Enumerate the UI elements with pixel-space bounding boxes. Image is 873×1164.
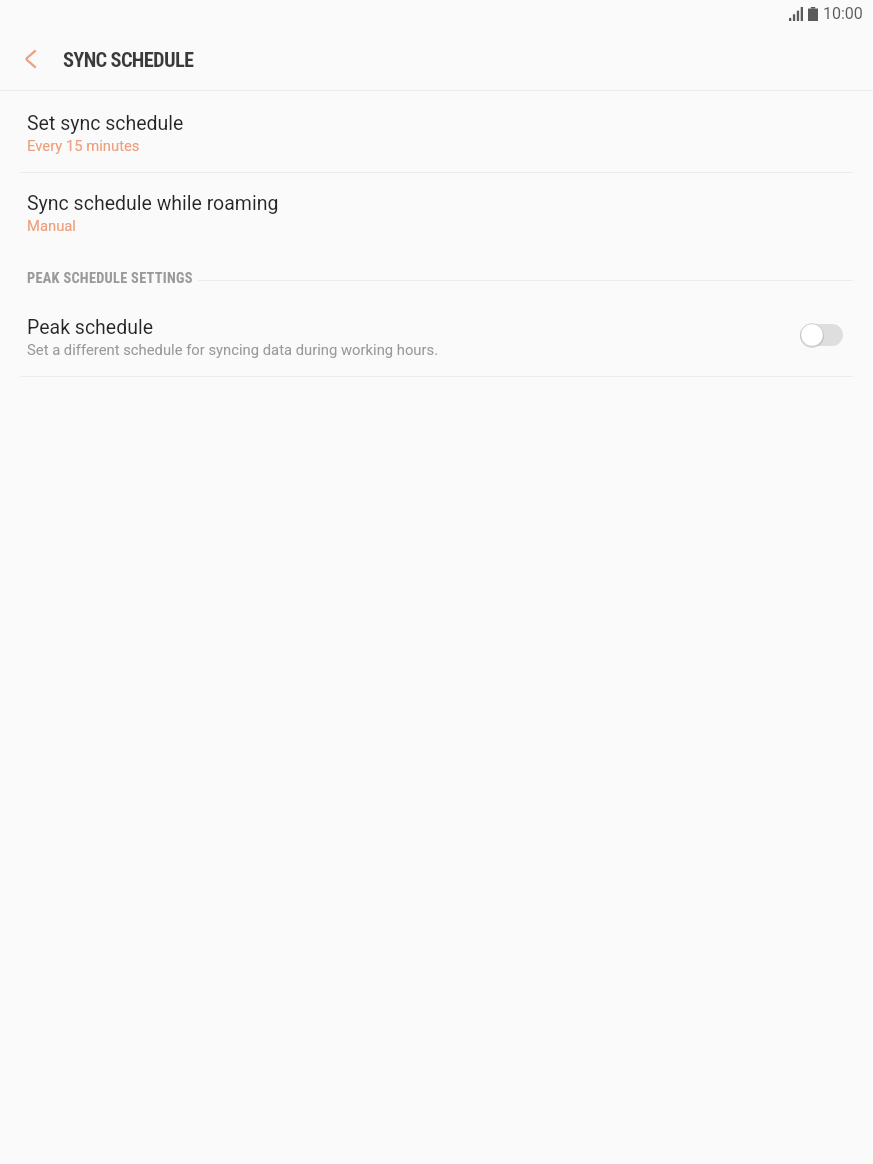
staticText: PEAK SCHEDULE SETTINGS (27, 270, 193, 287)
button[interactable]: Toggle peak schedule (800, 307, 854, 363)
button[interactable]: Sync schedule while roaming (0, 173, 873, 254)
other: Signal strength (789, 7, 803, 21)
button[interactable]: Set sync schedule (0, 91, 873, 172)
staticText: Set sync schedule (27, 112, 184, 135)
button[interactable]: Peak schedule (0, 304, 873, 376)
staticText: SYNC SCHEDULE (63, 48, 194, 72)
button[interactable]: Navigate up (0, 28, 64, 90)
staticText: Sync schedule while roaming (27, 192, 279, 215)
staticText: Set a different schedule for syncing dat… (27, 341, 439, 358)
staticText: Manual (27, 217, 76, 234)
other: Battery (808, 7, 818, 21)
staticText: Every 15 minutes (27, 137, 140, 154)
staticText: 10:00 (823, 4, 863, 23)
staticText: Peak schedule (27, 316, 154, 339)
